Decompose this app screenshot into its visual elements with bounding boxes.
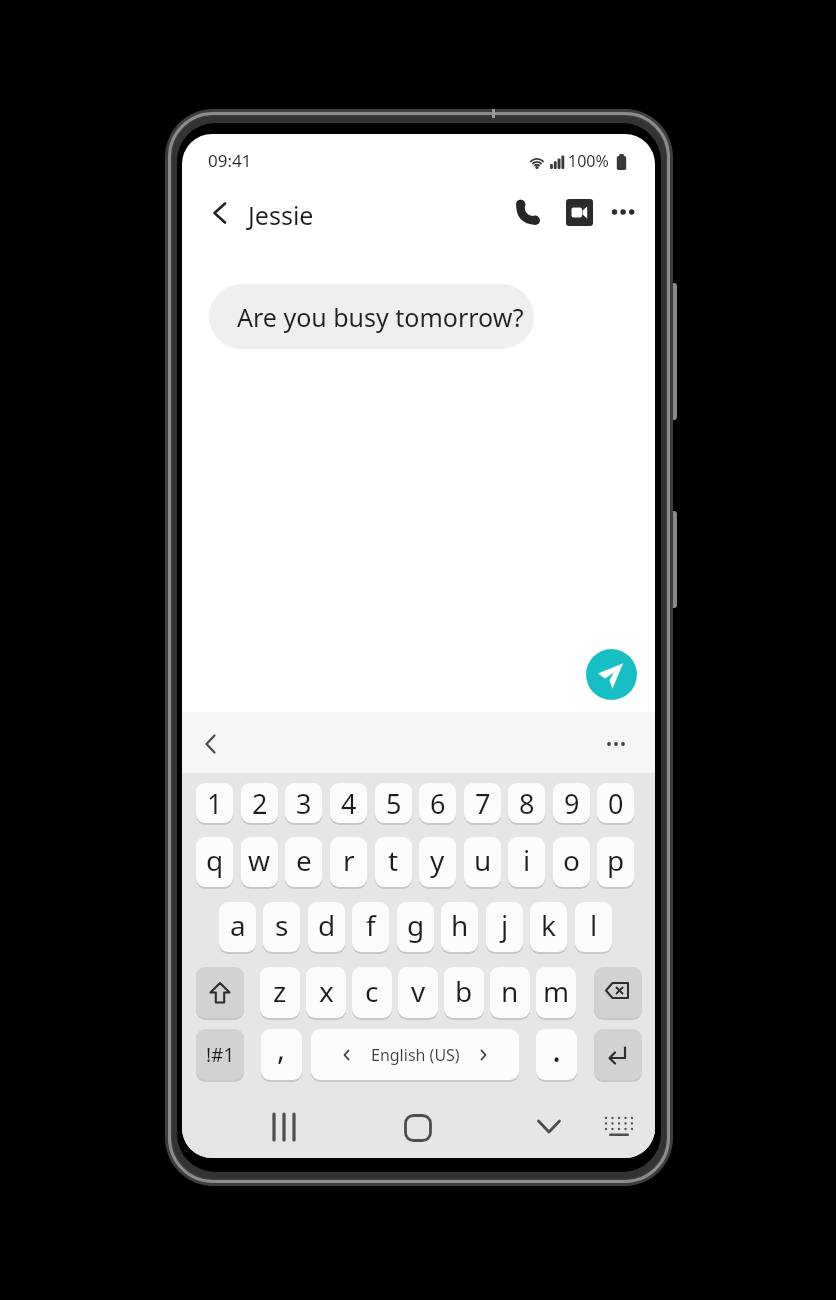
staticText: a — [230, 906, 246, 944]
button[interactable]: 2 — [241, 783, 278, 823]
staticText: r — [343, 841, 355, 879]
button[interactable]: z — [260, 967, 300, 1018]
staticText: 2 — [252, 785, 268, 822]
staticText: h — [451, 906, 469, 944]
staticText: k — [541, 906, 556, 944]
button[interactable]: w — [241, 837, 278, 887]
button[interactable] — [527, 1104, 571, 1148]
button[interactable]: e — [285, 837, 322, 887]
button[interactable]: t — [375, 837, 412, 887]
staticText: n — [501, 972, 519, 1010]
button[interactable]: d — [308, 902, 345, 952]
staticText: i — [523, 841, 531, 879]
button[interactable] — [190, 723, 232, 765]
button[interactable]: a — [219, 902, 256, 952]
button[interactable]: 0 — [597, 783, 634, 823]
button[interactable]: 6 — [419, 783, 456, 823]
button[interactable] — [597, 1105, 641, 1149]
button[interactable]: x — [306, 967, 346, 1018]
staticText: 0 — [608, 785, 624, 822]
button[interactable]: Are you busy tomorrow? — [209, 284, 534, 349]
button[interactable]: o — [553, 837, 590, 887]
button[interactable]: l — [575, 902, 612, 952]
staticText: z — [273, 972, 287, 1010]
button[interactable]: h — [441, 902, 478, 952]
staticText: l — [590, 906, 598, 944]
staticText: f — [366, 906, 376, 944]
staticText: m — [543, 972, 570, 1010]
staticText: q — [206, 841, 224, 879]
button[interactable]: 8 — [508, 783, 545, 823]
button[interactable]: c — [352, 967, 392, 1018]
staticText: p — [607, 841, 625, 879]
button[interactable] — [198, 192, 242, 236]
button[interactable]: j — [486, 902, 523, 952]
staticText: e — [296, 841, 312, 879]
button[interactable]: m — [536, 967, 576, 1018]
button[interactable]: 1 — [196, 783, 233, 823]
button[interactable] — [262, 1105, 306, 1149]
button[interactable] — [586, 649, 637, 700]
staticText: 3 — [296, 785, 312, 822]
button[interactable]: English (US) — [311, 1029, 519, 1080]
button[interactable]: , — [261, 1029, 302, 1080]
button[interactable] — [396, 1106, 440, 1150]
staticText: o — [563, 841, 580, 879]
staticText: j — [501, 906, 509, 944]
button[interactable] — [601, 190, 645, 234]
staticText: w — [248, 841, 271, 879]
staticText: English (US) — [371, 1044, 460, 1066]
staticText: c — [365, 972, 379, 1010]
button[interactable]: 7 — [464, 783, 501, 823]
button[interactable]: k — [530, 902, 567, 952]
staticText: 5 — [386, 785, 402, 822]
staticText: . — [552, 1029, 562, 1072]
staticText: Jessie — [248, 198, 314, 232]
button[interactable]: q — [196, 837, 233, 887]
staticText: s — [275, 906, 289, 944]
staticText: v — [411, 972, 426, 1010]
staticText: d — [318, 906, 336, 944]
staticText: 6 — [430, 785, 446, 822]
button[interactable]: p — [597, 837, 634, 887]
staticText: 4 — [341, 785, 357, 822]
button[interactable] — [506, 190, 550, 234]
staticText: g — [407, 906, 425, 944]
button[interactable]: v — [398, 967, 438, 1018]
staticText: 8 — [519, 785, 535, 822]
button[interactable]: r — [330, 837, 367, 887]
staticText: y — [430, 841, 445, 879]
staticText: x — [319, 972, 334, 1010]
button[interactable]: g — [397, 902, 434, 952]
button[interactable] — [594, 967, 642, 1018]
button[interactable]: n — [490, 967, 530, 1018]
button[interactable]: . — [536, 1029, 577, 1080]
button[interactable]: u — [464, 837, 501, 887]
button[interactable]: !#1 — [196, 1029, 244, 1080]
staticText: 9 — [564, 785, 580, 822]
staticText: u — [474, 841, 492, 879]
button[interactable]: y — [419, 837, 456, 887]
button[interactable]: 3 — [285, 783, 322, 823]
button[interactable] — [557, 190, 601, 234]
button[interactable]: b — [444, 967, 484, 1018]
staticText: b — [455, 972, 473, 1010]
staticText: t — [388, 841, 399, 879]
staticText: 1 — [207, 785, 223, 822]
staticText: !#1 — [206, 1042, 235, 1068]
staticText: 100% — [568, 150, 609, 172]
button[interactable]: 4 — [330, 783, 367, 823]
button[interactable]: f — [352, 902, 389, 952]
staticText: 7 — [475, 785, 491, 822]
button[interactable]: 9 — [553, 783, 590, 823]
button[interactable]: i — [508, 837, 545, 887]
button[interactable]: 5 — [375, 783, 412, 823]
button[interactable] — [594, 1029, 642, 1080]
staticText: 09:41 — [208, 149, 252, 172]
button[interactable]: s — [263, 902, 300, 952]
button[interactable] — [595, 723, 637, 765]
staticText: Are you busy tomorrow? — [237, 300, 524, 334]
staticText: , — [277, 1029, 286, 1069]
button[interactable] — [196, 967, 244, 1018]
